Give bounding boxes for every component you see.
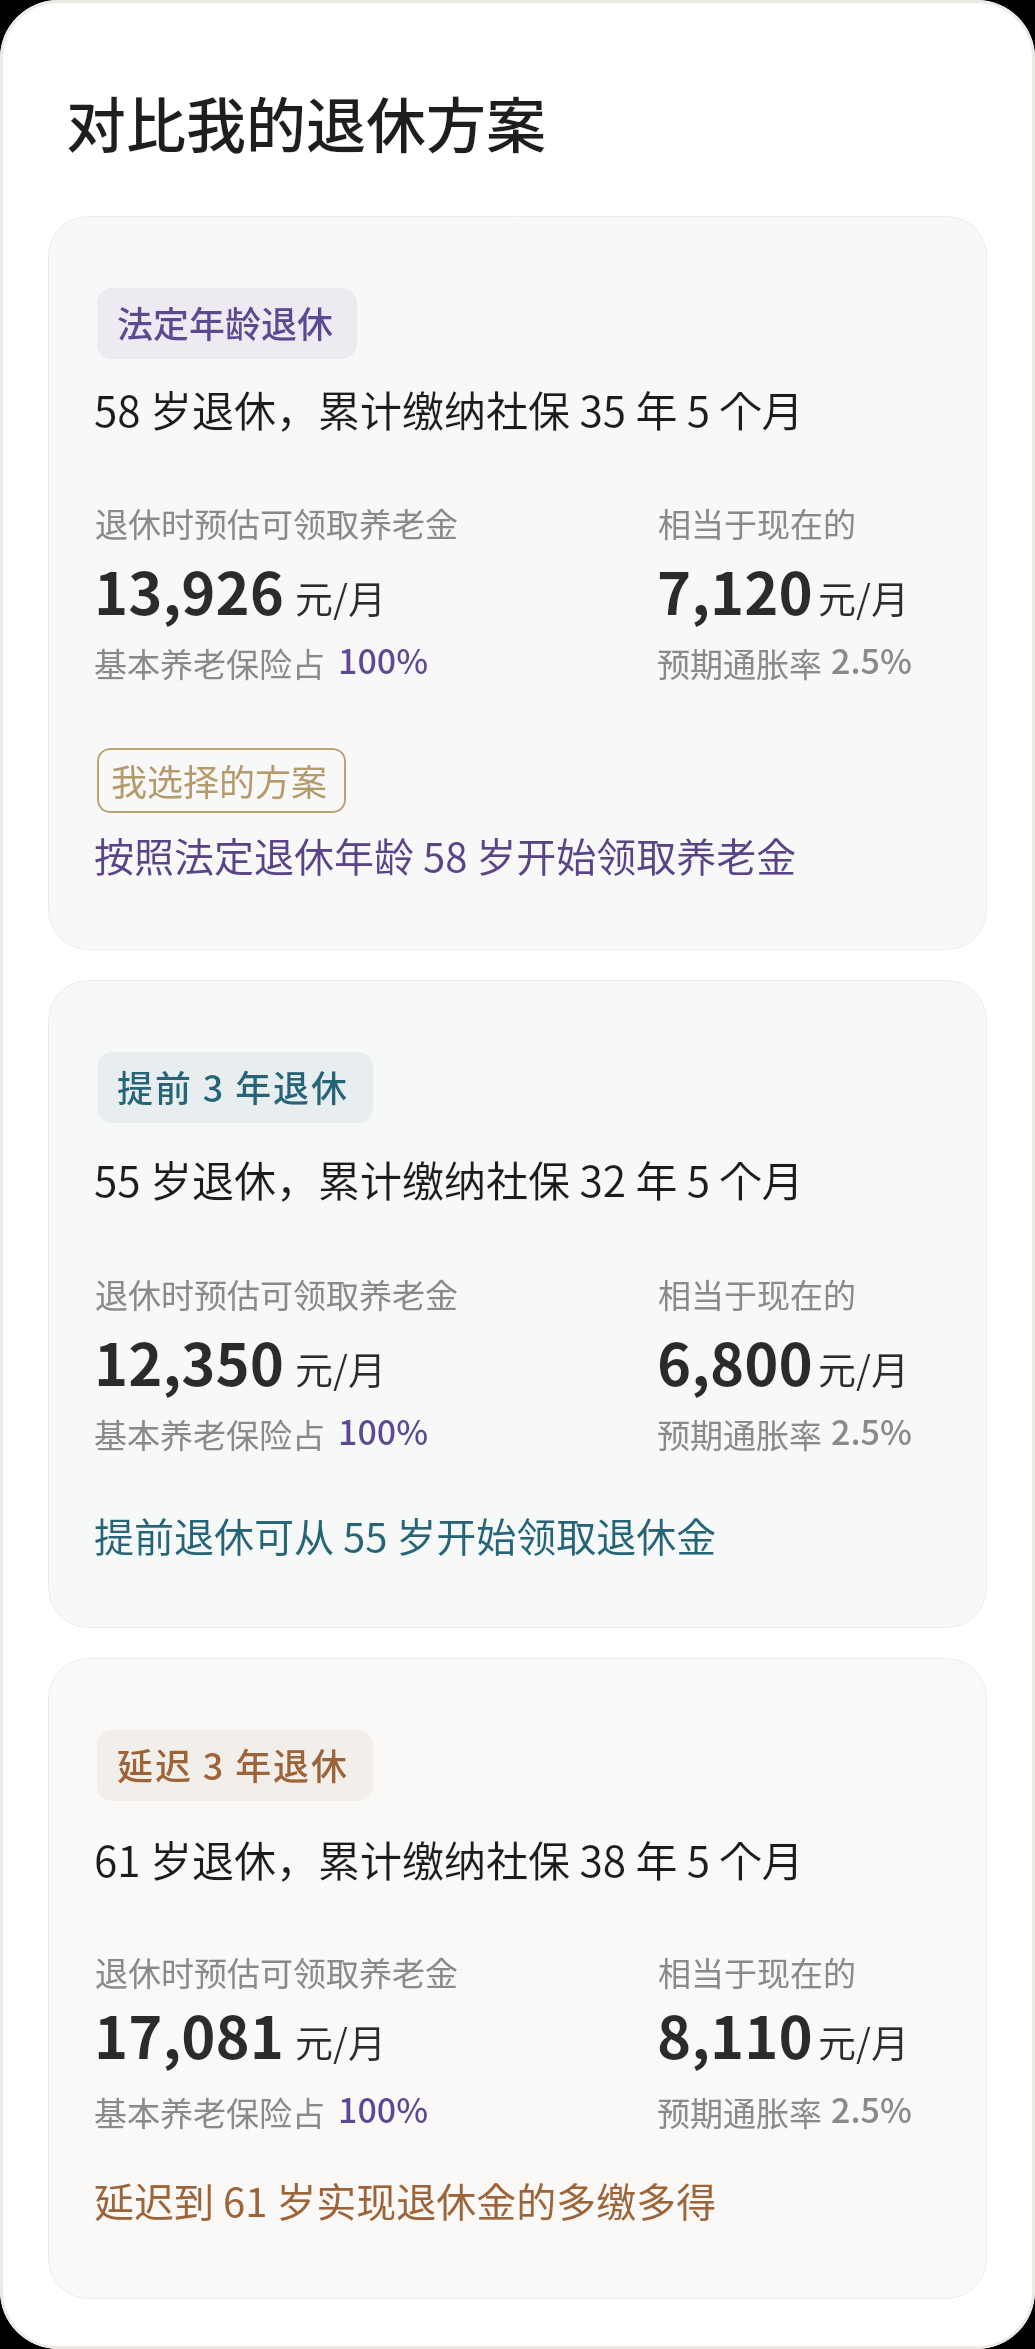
staticText: 55 岁退休，累计缴纳社保 32 年 5 个月 bbox=[94, 1148, 804, 1209]
staticText: 7,120 bbox=[657, 548, 813, 632]
staticText: 提前 3 年退休 bbox=[117, 1060, 349, 1112]
staticText: 预期通胀率 bbox=[657, 1410, 822, 1458]
staticText: 元/月 bbox=[295, 569, 386, 624]
staticText: 按照法定退休年龄 58 岁开始领取养老金 bbox=[94, 826, 797, 884]
staticText: 12,350 bbox=[94, 1319, 284, 1403]
staticText: 延迟到 61 岁实现退休金的多缴多得 bbox=[94, 2171, 717, 2229]
staticText: 2.5% bbox=[831, 635, 912, 684]
staticText: 相当于现在的 bbox=[658, 1270, 856, 1318]
staticText: 元/月 bbox=[818, 1340, 909, 1395]
staticText: 法定年龄退休 bbox=[117, 296, 334, 348]
staticText: 2.5% bbox=[831, 1406, 912, 1455]
button[interactable]: 提前 3 年退休 bbox=[97, 1052, 373, 1123]
staticText: 58 岁退休，累计缴纳社保 35 年 5 个月 bbox=[94, 378, 804, 439]
staticText: 相当于现在的 bbox=[658, 499, 856, 547]
button[interactable]: 延迟 3 年退休 bbox=[97, 1730, 373, 1801]
staticText: 预期通胀率 bbox=[657, 2088, 822, 2136]
staticText: 基本养老保险占 bbox=[94, 639, 325, 687]
button[interactable]: 延迟 3 年退休 bbox=[48, 1658, 987, 2299]
staticText: 2.5% bbox=[831, 2084, 912, 2133]
staticText: 6,800 bbox=[657, 1319, 813, 1403]
staticText: 13,926 bbox=[94, 548, 284, 632]
button[interactable]: 提前 3 年退休 bbox=[48, 980, 987, 1628]
staticText: 退休时预估可领取养老金 bbox=[95, 1948, 458, 1996]
staticText: 预期通胀率 bbox=[657, 639, 822, 687]
staticText: 基本养老保险占 bbox=[94, 2088, 325, 2136]
staticText: 100% bbox=[338, 1406, 429, 1455]
staticText: 退休时预估可领取养老金 bbox=[95, 1270, 458, 1318]
button[interactable]: 法定年龄退休 bbox=[48, 216, 987, 950]
staticText: 我选择的方案 bbox=[111, 754, 328, 806]
staticText: 相当于现在的 bbox=[658, 1948, 856, 1996]
staticText: 对比我的退休方案 bbox=[66, 78, 546, 165]
button[interactable]: 我选择的方案 bbox=[97, 748, 346, 813]
staticText: 8,110 bbox=[657, 1992, 813, 2076]
staticText: 元/月 bbox=[295, 2013, 386, 2068]
staticText: 61 岁退休，累计缴纳社保 38 年 5 个月 bbox=[94, 1828, 804, 1889]
staticText: 元/月 bbox=[818, 569, 909, 624]
staticText: 延迟 3 年退休 bbox=[117, 1738, 349, 1790]
staticText: 100% bbox=[338, 2084, 429, 2133]
staticText: 100% bbox=[338, 635, 429, 684]
staticText: 提前退休可从 55 岁开始领取退休金 bbox=[94, 1506, 717, 1564]
staticText: 元/月 bbox=[295, 1340, 386, 1395]
staticText: 17,081 bbox=[94, 1992, 284, 2076]
staticText: 退休时预估可领取养老金 bbox=[95, 499, 458, 547]
staticText: 元/月 bbox=[818, 2013, 909, 2068]
button[interactable]: 法定年龄退休 bbox=[97, 288, 357, 359]
staticText: 基本养老保险占 bbox=[94, 1410, 325, 1458]
